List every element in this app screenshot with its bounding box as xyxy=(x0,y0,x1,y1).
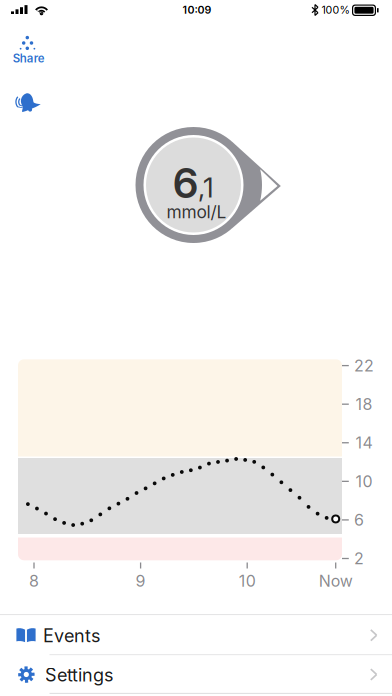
button[interactable]: Events xyxy=(0,615,392,655)
staticText: 22 xyxy=(354,356,374,375)
staticText: 6 xyxy=(173,158,198,208)
staticText: 14 xyxy=(355,433,372,452)
button[interactable]: Alerts xyxy=(0,86,48,120)
staticText: 6 xyxy=(354,510,364,530)
staticText: 18 xyxy=(355,394,372,414)
staticText: 9 xyxy=(136,571,146,591)
staticText: Now xyxy=(319,571,353,591)
staticText: 100% xyxy=(321,3,349,16)
staticText: mmol/L xyxy=(166,201,226,222)
staticText: 10 xyxy=(355,472,372,491)
staticText: 8 xyxy=(29,571,39,591)
staticText: Events xyxy=(43,625,101,647)
staticText: ,1 xyxy=(198,171,214,204)
staticText: Settings xyxy=(45,664,114,686)
staticText: 2 xyxy=(354,549,364,568)
staticText: 10:09 xyxy=(182,3,211,16)
staticText: 10 xyxy=(239,571,256,591)
button[interactable]: Settings xyxy=(0,655,392,694)
staticText: Share xyxy=(13,51,45,65)
button[interactable]: Share xyxy=(0,30,58,76)
